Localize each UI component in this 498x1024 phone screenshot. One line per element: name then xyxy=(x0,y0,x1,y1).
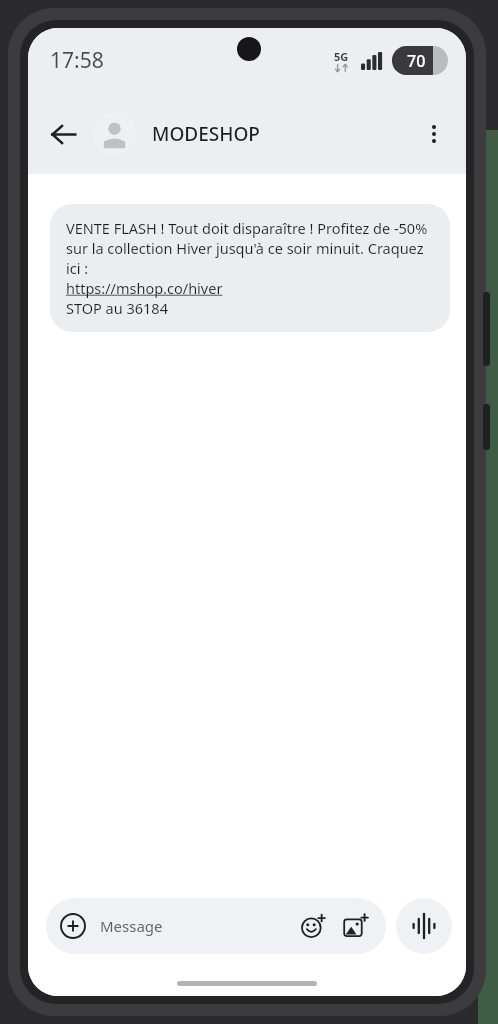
button[interactable]: Record voice message xyxy=(396,898,452,954)
staticText: 70 xyxy=(407,50,426,72)
button[interactable]: Add image xyxy=(338,909,372,943)
staticText: 17:58 xyxy=(50,46,104,75)
button[interactable]: VENTE FLASH ! Tout doit disparaître ! Pr… xyxy=(50,204,450,332)
button[interactable]: More options xyxy=(412,112,456,156)
staticText: 5G xyxy=(334,49,349,64)
button[interactable]: Attach xyxy=(46,898,386,954)
staticText: Message xyxy=(100,916,296,936)
staticText: MODESHOP xyxy=(152,121,412,147)
other: Attach xyxy=(60,913,86,939)
button[interactable]: Back xyxy=(40,111,86,157)
staticText: VENTE FLASH ! Tout doit disparaître ! Pr… xyxy=(66,218,434,318)
button[interactable]: Add emoji xyxy=(296,909,330,943)
button[interactable]: Contact avatar xyxy=(92,112,136,156)
